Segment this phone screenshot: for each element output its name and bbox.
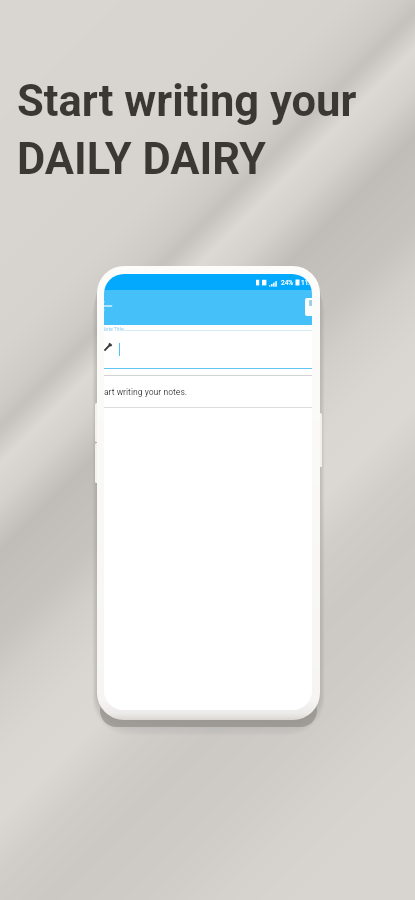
other: Back <box>104 298 113 314</box>
staticText: Start writing your notes. <box>104 387 188 397</box>
staticText: Note Title <box>104 326 124 332</box>
staticText: 24% <box>281 279 294 287</box>
staticText: Start writing your <box>17 76 357 127</box>
button[interactable]: Back <box>104 290 312 325</box>
staticText: 11: <box>301 279 310 287</box>
button[interactable]: Save note <box>305 298 312 316</box>
staticText: DAILY DAIRY <box>17 134 266 185</box>
